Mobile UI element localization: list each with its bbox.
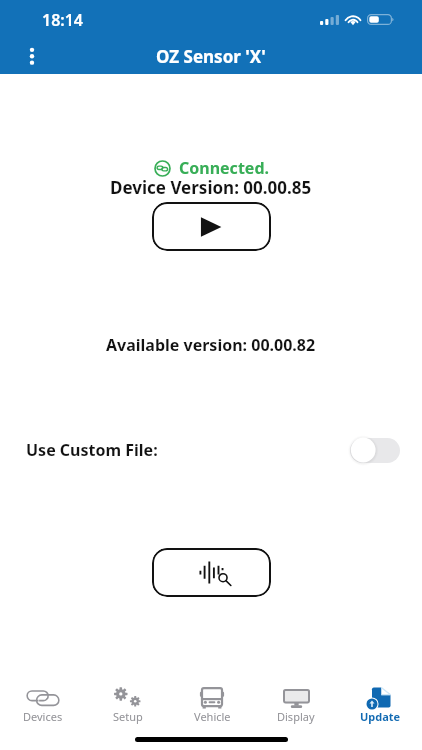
- button[interactable]: Vehicle: [170, 684, 254, 724]
- staticText: Devices: [23, 709, 63, 724]
- button[interactable]: Play: [152, 202, 271, 251]
- staticText: Setup: [113, 709, 143, 724]
- staticText: Available version: 00.00.82: [106, 334, 316, 356]
- staticText: 18:14: [42, 9, 84, 31]
- staticText: Vehicle: [194, 709, 231, 724]
- staticText: Connected.: [179, 157, 269, 179]
- button[interactable]: Display: [254, 684, 338, 724]
- staticText: Device Version: 00.00.85: [110, 176, 312, 199]
- button[interactable]: Analyse recording: [152, 548, 271, 597]
- staticText: Use Custom File:: [26, 439, 158, 461]
- button[interactable]: Use custom file toggle: [350, 437, 400, 463]
- staticText: Update: [360, 709, 401, 724]
- button[interactable]: More options: [20, 41, 44, 71]
- staticText: Display: [277, 709, 315, 724]
- button[interactable]: Devices: [0, 684, 85, 724]
- button[interactable]: Update: [338, 684, 422, 724]
- button[interactable]: Setup: [85, 684, 170, 724]
- staticText: OZ Sensor 'X': [156, 45, 266, 68]
